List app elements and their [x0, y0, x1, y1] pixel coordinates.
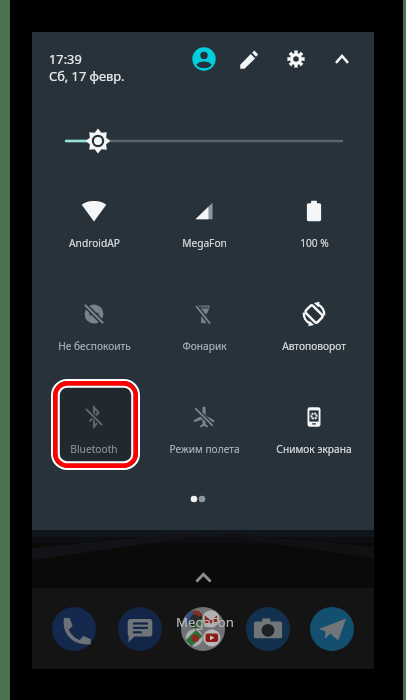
button[interactable]: Автоповорот: [260, 290, 368, 356]
button[interactable]: AndroidAP: [40, 187, 148, 253]
button[interactable]: Google: [171, 597, 235, 661]
button[interactable]: Messages: [108, 597, 172, 661]
staticText: 17:39: [49, 50, 82, 67]
button[interactable]: Telegram: [300, 597, 364, 661]
button[interactable]: Режим полета: [150, 393, 258, 459]
staticText: Автоповорот: [282, 339, 346, 353]
button[interactable]: Не беспокоить: [40, 290, 148, 356]
staticText: MegaFon: [176, 613, 234, 631]
button[interactable]: Collapse: [321, 38, 363, 80]
staticText: Сб, 17 февр.: [49, 67, 125, 84]
button[interactable]: Brightness: [52, 127, 354, 155]
button[interactable]: Camera: [236, 597, 300, 661]
button[interactable]: 100 %: [260, 187, 368, 253]
button[interactable]: Bluetooth: [40, 393, 148, 459]
button[interactable]: MegaFon: [150, 187, 258, 253]
staticText: Фонарик: [182, 339, 227, 353]
button[interactable]: All apps: [188, 566, 218, 588]
staticText: Режим полета: [169, 442, 240, 456]
staticText: 100 %: [300, 236, 329, 250]
button[interactable]: Settings: [275, 38, 317, 80]
staticText: AndroidAP: [69, 236, 120, 250]
staticText: Bluetooth: [70, 442, 118, 456]
staticText: Снимок экрана: [276, 442, 352, 456]
button[interactable]: Edit: [228, 39, 270, 81]
button[interactable]: Phone: [42, 597, 106, 661]
staticText: MegaFon: [182, 236, 227, 250]
button[interactable]: Снимок экрана: [260, 393, 368, 459]
staticText: Не беспокоить: [58, 339, 131, 353]
button[interactable]: Фонарик: [150, 290, 258, 356]
button[interactable]: Account: [183, 38, 225, 80]
